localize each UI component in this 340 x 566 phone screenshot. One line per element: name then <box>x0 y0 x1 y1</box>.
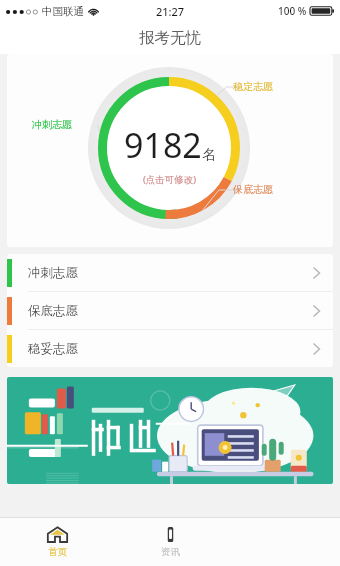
staticText: 冲刺志愿 <box>32 118 72 131</box>
staticText: 保底志愿 <box>28 303 78 319</box>
staticText: 9182 <box>124 122 202 168</box>
staticText: 首页 <box>48 546 67 558</box>
button[interactable]: 稳妥志愿 <box>7 330 333 367</box>
staticText: 100 % <box>278 4 307 18</box>
staticText: 报考无忧 <box>139 28 201 48</box>
staticText: 中国联通 <box>42 5 84 18</box>
button[interactable]: 资讯 <box>114 518 227 566</box>
staticText: 稳妥志愿 <box>28 341 78 357</box>
staticText: 稳定志愿 <box>233 80 273 93</box>
button[interactable]: Welcome banner <box>7 377 333 484</box>
staticText: 资讯 <box>161 546 180 558</box>
button[interactable]: 首页 <box>0 518 114 566</box>
staticText: 21:27 <box>156 4 185 19</box>
button[interactable]: 冲刺志愿 <box>7 254 333 292</box>
staticText: 名 <box>202 146 216 164</box>
staticText: 保底志愿 <box>233 183 273 196</box>
button[interactable]: 保底志愿 <box>7 292 333 330</box>
staticText: 冲刺志愿 <box>28 265 78 281</box>
staticText: (点击可修改) <box>143 173 197 186</box>
button[interactable]: 9182 <box>124 122 216 186</box>
